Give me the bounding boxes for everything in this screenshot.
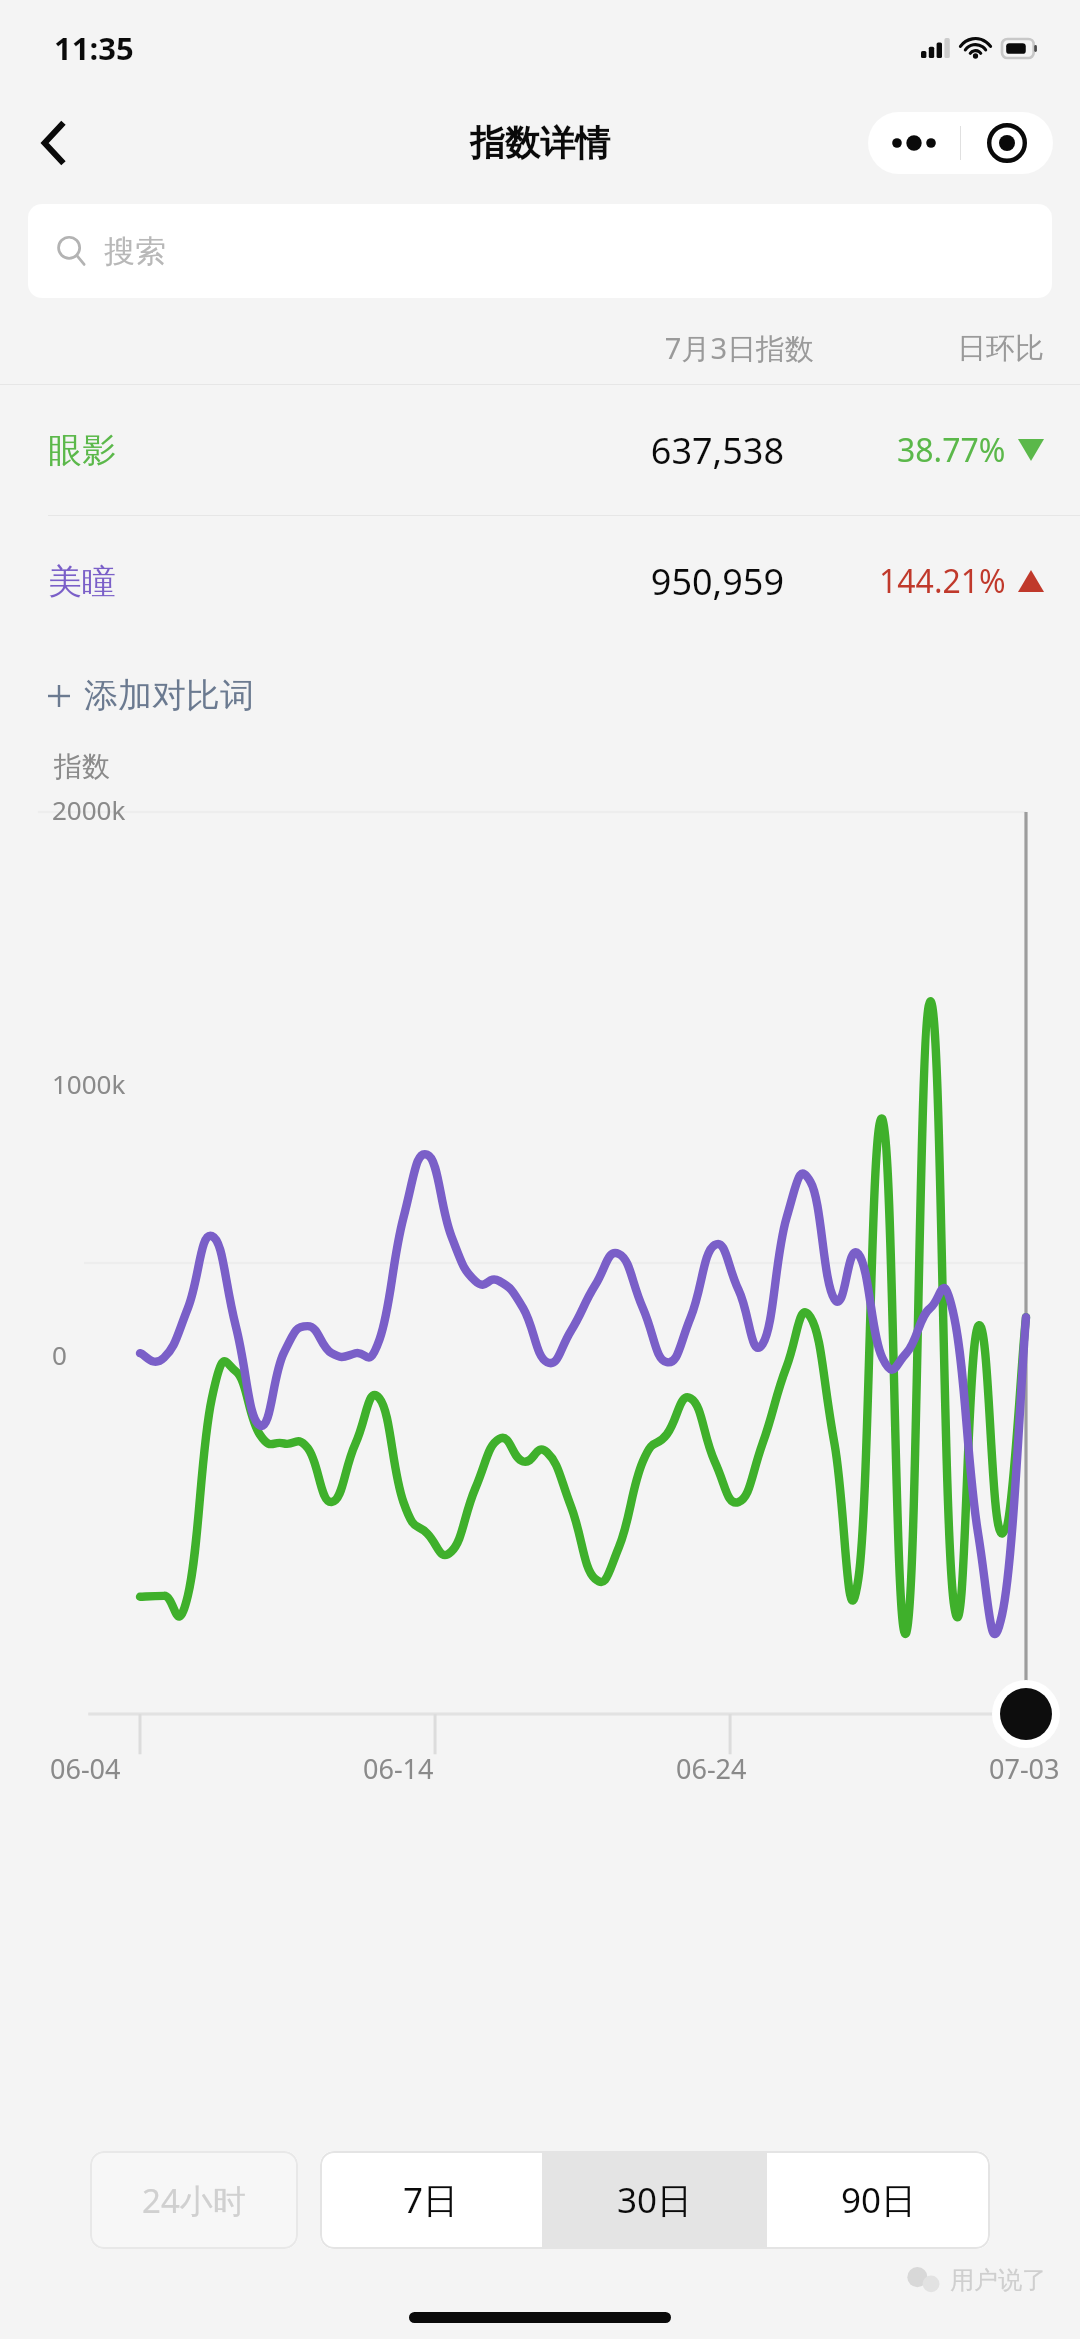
staticText: 7月3日指数 — [564, 328, 814, 368]
button[interactable]: 添加对比词 — [48, 674, 254, 717]
staticText: 38.77% — [897, 428, 1006, 472]
staticText: 24小时 — [142, 2178, 246, 2223]
button[interactable]: 搜索 — [28, 204, 1052, 298]
button[interactable]: 30日 — [543, 2151, 766, 2249]
staticText: 7日 — [403, 2176, 459, 2224]
staticText: 0 — [52, 1337, 67, 1372]
button[interactable]: 90日 — [767, 2151, 990, 2249]
button[interactable]: 眼影 — [0, 385, 1080, 515]
staticText: 眼影 — [48, 429, 116, 472]
staticText: 用户说了 — [950, 2265, 1046, 2295]
staticText: 1000k — [52, 1066, 126, 1101]
staticText: 07-03 — [989, 1750, 1060, 1787]
staticText: 11:35 — [54, 27, 134, 69]
staticText: 950,959 — [534, 557, 784, 606]
button[interactable]: 24小时 — [90, 2151, 298, 2249]
button[interactable]: 7日 — [320, 2151, 542, 2249]
staticText: 日环比 — [884, 330, 1044, 367]
staticText: 指数详情 — [470, 121, 610, 165]
staticText: 搜索 — [104, 232, 166, 271]
staticText: 06-04 — [50, 1750, 121, 1787]
staticText: 指数 — [54, 749, 110, 784]
staticText: 2000k — [52, 792, 126, 827]
staticText: 30日 — [617, 2176, 693, 2224]
button[interactable]: More options — [868, 112, 960, 174]
staticText: 144.21% — [879, 559, 1006, 603]
staticText: 美瞳 — [48, 560, 116, 603]
button[interactable]: 美瞳 — [0, 516, 1080, 646]
button[interactable]: Back — [22, 112, 84, 174]
button[interactable]: Close — [961, 112, 1053, 174]
staticText: 90日 — [841, 2176, 917, 2224]
staticText: 637,538 — [534, 426, 784, 475]
staticText: 06-24 — [676, 1750, 747, 1787]
staticText: 添加对比词 — [84, 674, 254, 717]
staticText: 06-14 — [363, 1750, 434, 1787]
